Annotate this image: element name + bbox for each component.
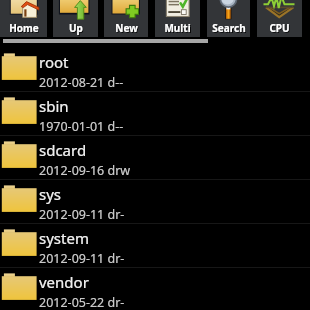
staticText: 2012-09-16 drw (39, 162, 131, 179)
button[interactable]: system (0, 224, 310, 268)
staticText: Multi (164, 21, 191, 35)
staticText: 2012-09-11 dr- (39, 206, 125, 223)
button[interactable]: Search (207, 0, 250, 37)
button[interactable]: Home (0, 0, 47, 37)
button[interactable]: Multi (155, 0, 200, 37)
button[interactable]: CPU (257, 0, 302, 37)
staticText: sdcard (39, 140, 87, 160)
staticText: vendor (39, 272, 89, 292)
staticText: sbin (39, 96, 69, 116)
button[interactable]: sdcard (0, 136, 310, 180)
staticText: New (115, 21, 138, 35)
button[interactable]: root (0, 48, 310, 92)
staticText: Search (213, 22, 247, 36)
staticText: Up (70, 22, 84, 36)
staticText: root (39, 52, 69, 72)
staticText: Search (212, 21, 246, 35)
button[interactable]: sbin (0, 92, 310, 136)
button[interactable]: Up (53, 0, 98, 37)
staticText: system (39, 228, 89, 248)
staticText: Home (9, 21, 39, 35)
staticText: New (116, 22, 139, 36)
staticText: Multi (165, 22, 192, 36)
staticText: 2012-09-11 dr- (39, 250, 125, 267)
staticText: CPU (269, 21, 290, 35)
staticText: Up (69, 21, 83, 35)
staticText: Home (10, 22, 40, 36)
button[interactable]: vendor (0, 268, 310, 310)
button[interactable]: New (104, 0, 148, 37)
button[interactable]: sys (0, 180, 310, 224)
staticText: 1970-01-01 d-- (39, 118, 124, 135)
staticText: 2012-08-21 d-- (39, 74, 124, 91)
staticText: 2012-05-22 dr- (39, 294, 125, 310)
staticText: CPU (270, 22, 291, 36)
staticText: sys (39, 184, 62, 204)
